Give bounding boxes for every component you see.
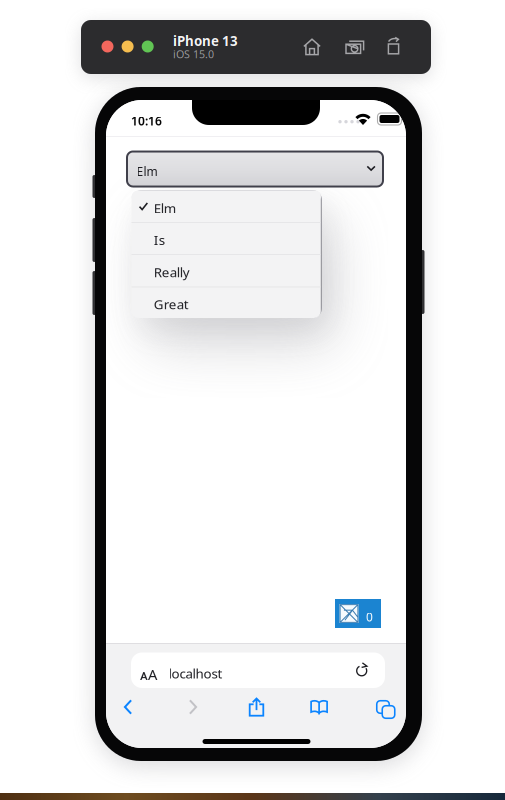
button[interactable]: Tabs — [361, 692, 405, 722]
staticText: Elm — [136, 163, 157, 179]
button[interactable]: Minimize — [122, 40, 134, 52]
button[interactable]: Home — [303, 38, 321, 56]
button[interactable]: Elm — [130, 190, 323, 222]
button[interactable]: Is — [130, 222, 323, 254]
button[interactable]: Great — [130, 286, 323, 318]
staticText: localhost — [168, 664, 222, 682]
button[interactable]: Elm — [127, 151, 383, 186]
staticText: iOS 15.0 — [173, 47, 214, 61]
button[interactable]: Forward — [171, 692, 215, 722]
button[interactable]: Really — [130, 254, 323, 286]
staticText: Really — [154, 263, 190, 281]
button[interactable]: Bookmarks — [298, 692, 342, 722]
button[interactable]: Zoom — [142, 40, 154, 52]
staticText: iPhone 13 — [173, 32, 238, 50]
button[interactable]: Share — [234, 692, 278, 722]
button[interactable]: ᴀA — [131, 652, 385, 688]
staticText: ᴀA — [140, 664, 157, 684]
button[interactable]: Close — [101, 40, 113, 52]
staticText: Great — [154, 295, 189, 313]
button[interactable]: Back — [106, 692, 150, 722]
staticText: Is — [154, 231, 165, 249]
button[interactable]: Screenshot — [345, 38, 365, 56]
staticText: Elm — [154, 199, 176, 217]
staticText: 0 — [366, 609, 373, 625]
staticText: 10:16 — [131, 113, 162, 129]
button[interactable]: Rotate — [386, 37, 401, 55]
